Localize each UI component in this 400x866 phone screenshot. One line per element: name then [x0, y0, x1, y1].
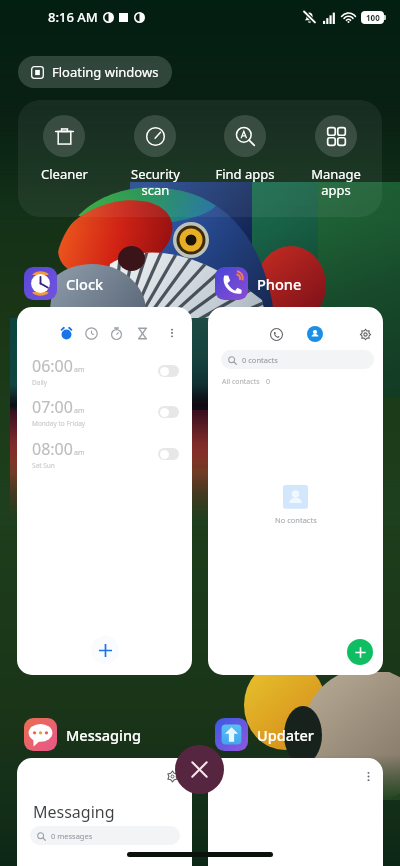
staticText: Find apps	[215, 165, 275, 183]
staticText: Messaging	[66, 725, 142, 745]
button[interactable]: 0 contacts	[221, 350, 374, 369]
staticText: Security scan	[131, 165, 180, 198]
button[interactable]	[208, 758, 383, 866]
button[interactable]: Contacts	[307, 326, 323, 342]
staticText: Daily	[32, 378, 48, 387]
button[interactable]: Add contact	[347, 639, 373, 665]
staticText: 100	[366, 12, 380, 23]
button[interactable]	[158, 406, 179, 418]
button[interactable]: Updater	[215, 718, 314, 751]
button[interactable]: Floating windows	[18, 56, 172, 88]
staticText: Floating windows	[52, 63, 159, 81]
staticText: Manage apps	[311, 165, 361, 198]
staticText: All contacts	[222, 377, 260, 387]
button[interactable]: Manage apps	[291, 115, 381, 198]
staticText: 8:16 AM	[48, 8, 98, 26]
button[interactable]: Contacts	[208, 307, 383, 675]
staticText: Monday to Friday	[32, 419, 86, 428]
button[interactable]: Find apps	[200, 115, 290, 183]
staticText: Sat Sun	[32, 461, 55, 470]
staticText: am	[74, 406, 85, 416]
button[interactable]: Phone	[215, 267, 302, 300]
staticText: 0 contacts	[242, 355, 278, 365]
staticText: Phone	[257, 274, 302, 294]
staticText: Messaging	[33, 801, 115, 823]
staticText: 0	[266, 377, 271, 387]
staticText: 08:00	[32, 438, 73, 460]
button[interactable]	[158, 365, 179, 377]
staticText: No contacts	[275, 515, 317, 525]
button[interactable]: Clock	[24, 267, 104, 300]
staticText: am	[74, 448, 85, 458]
staticText: Updater	[257, 725, 314, 745]
staticText: 0 messages	[51, 831, 93, 841]
staticText: 07:00	[32, 396, 73, 418]
staticText: Cleaner	[41, 165, 88, 183]
staticText: am	[74, 365, 85, 375]
button[interactable]: 0 messages	[30, 826, 180, 845]
button[interactable]: Messaging	[17, 758, 192, 866]
button[interactable]: Security scan	[110, 115, 200, 198]
button[interactable]: Close all	[175, 745, 224, 794]
button[interactable]: Messaging	[24, 718, 142, 751]
staticText: 06:00	[32, 355, 73, 377]
staticText: Clock	[66, 274, 104, 294]
button[interactable]: 06:00	[17, 307, 192, 675]
button[interactable]	[158, 448, 179, 460]
button[interactable]: Add alarm	[91, 636, 119, 664]
button[interactable]: Cleaner	[19, 115, 109, 183]
